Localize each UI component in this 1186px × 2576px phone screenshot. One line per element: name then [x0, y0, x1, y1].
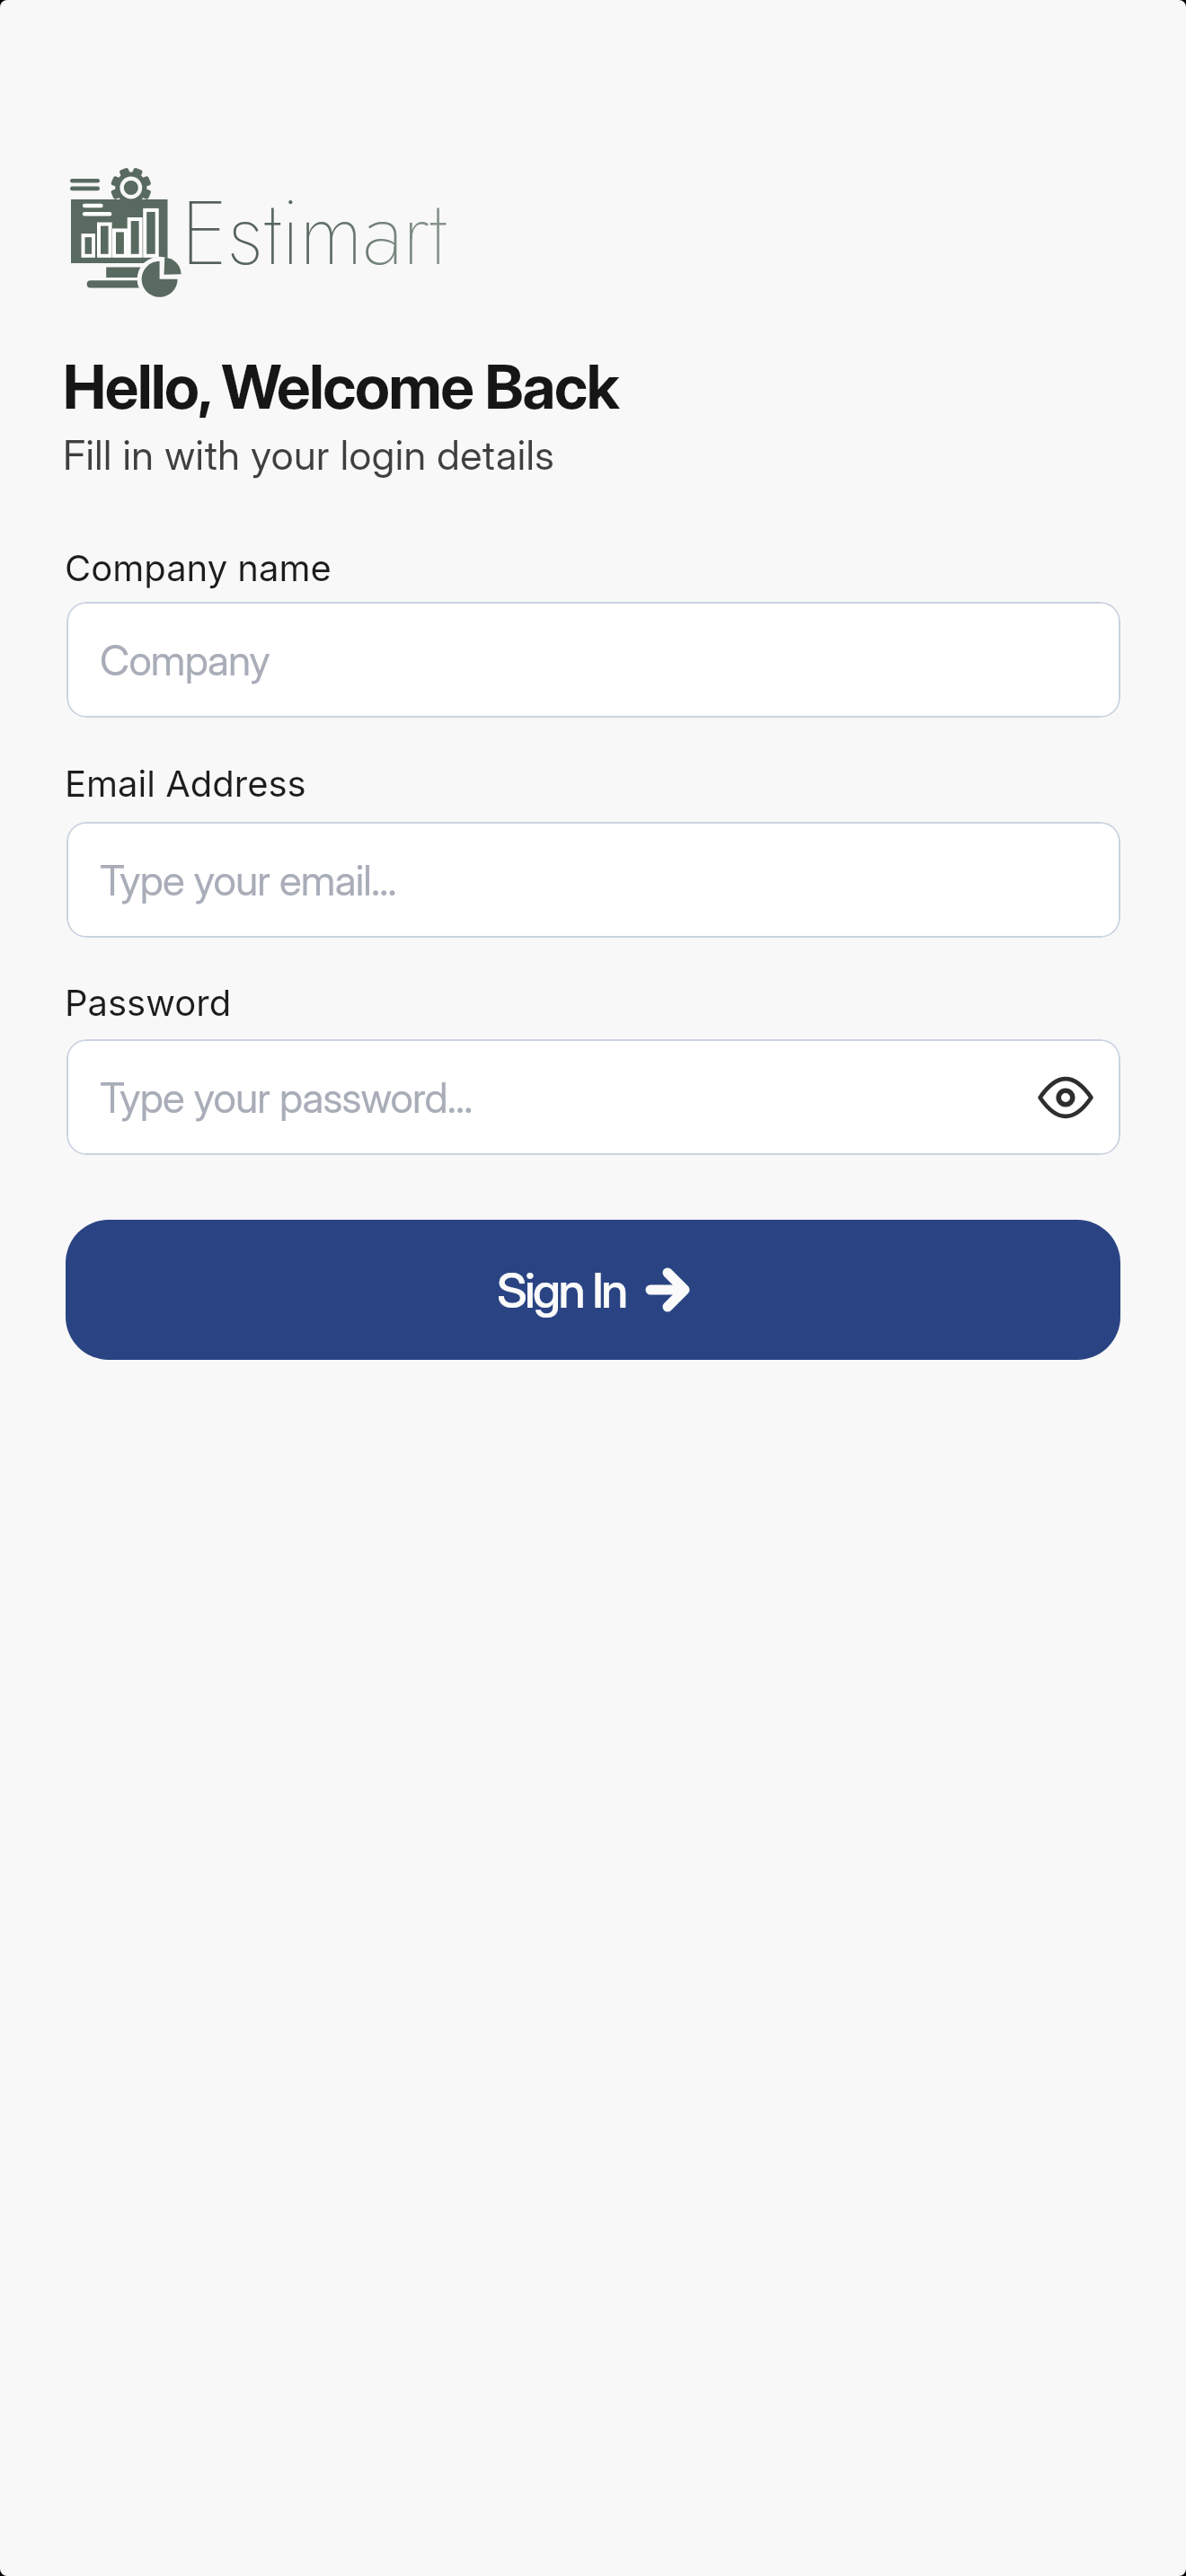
button[interactable]: Type your password... [66, 1039, 1120, 1155]
button[interactable]: Company [66, 602, 1120, 718]
staticText: Sign In [497, 1261, 626, 1319]
staticText: Company [100, 635, 270, 685]
staticText: Type your password... [100, 1072, 473, 1123]
staticText: Estimart [181, 168, 447, 298]
staticText: Company name [65, 546, 332, 589]
button[interactable]: Type your email... [66, 822, 1120, 938]
button[interactable]: Sign In [66, 1220, 1120, 1360]
staticText: Type your email... [100, 855, 396, 905]
staticText: Password [65, 981, 232, 1024]
staticText: Fill in with your login details [63, 430, 555, 479]
button[interactable] [1038, 1078, 1093, 1117]
staticText: Hello, Welcome Back [63, 350, 619, 423]
staticText: Email Address [65, 762, 306, 805]
